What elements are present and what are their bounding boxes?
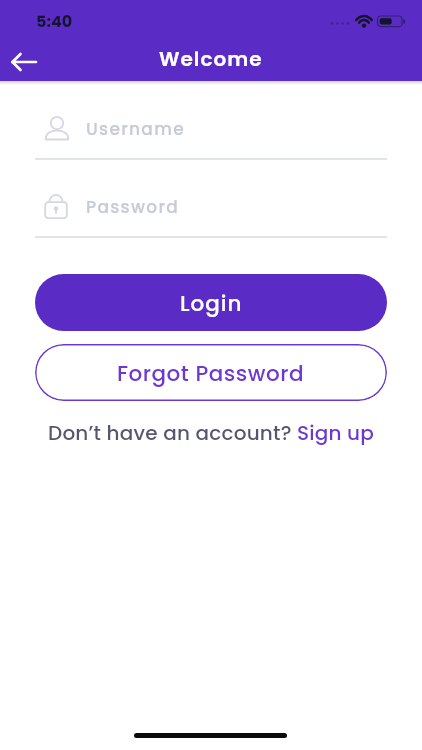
staticText: Login (180, 288, 243, 318)
button[interactable]: Forgot Password (35, 344, 387, 401)
staticText: Username (86, 117, 185, 141)
button[interactable]: Don’t have an account? Sign up (48, 419, 375, 447)
staticText: Forgot Password (117, 358, 305, 388)
staticText: Password (86, 195, 180, 219)
button[interactable]: Login (35, 274, 387, 331)
button[interactable]: Password (35, 190, 387, 238)
staticText: 5:40 (36, 10, 73, 30)
button[interactable] (6, 44, 42, 80)
staticText: Welcome (159, 45, 263, 73)
button[interactable]: Username (35, 112, 387, 160)
